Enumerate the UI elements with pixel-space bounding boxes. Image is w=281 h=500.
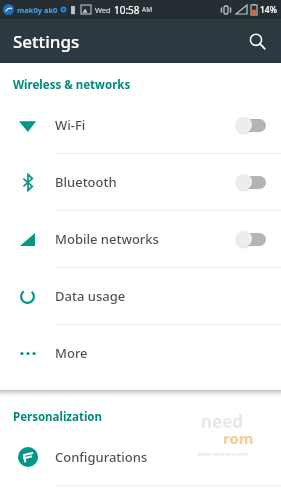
button[interactable]: Configurations (0, 429, 281, 485)
button[interactable]: Mobile networks (0, 211, 281, 267)
staticText: 14% (260, 4, 277, 16)
staticText: Wireless & networks (13, 77, 131, 93)
staticText: mak0y ak0 (17, 5, 58, 15)
button[interactable]: Data usage (0, 268, 281, 324)
button[interactable]: Wi-Fi (0, 97, 281, 153)
staticText: Configurations (55, 448, 281, 466)
staticText: Settings (13, 30, 80, 53)
staticText: rom (223, 428, 254, 448)
button[interactable]: Bluetooth (0, 154, 281, 210)
staticText: Personalization (13, 409, 102, 425)
staticText: Wi-Fi (55, 116, 235, 134)
button[interactable]: More (0, 325, 281, 381)
button[interactable]: Search (239, 23, 275, 59)
staticText: need (201, 410, 244, 433)
staticText: www.needrom.com (197, 450, 248, 457)
staticText: Bluetooth (55, 173, 235, 191)
staticText: AM (142, 5, 153, 14)
staticText: Wed (95, 5, 111, 15)
staticText: Mobile networks (55, 230, 235, 248)
staticText: More (55, 344, 281, 362)
staticText: 10:58 (114, 3, 140, 17)
staticText: Data usage (55, 287, 281, 305)
